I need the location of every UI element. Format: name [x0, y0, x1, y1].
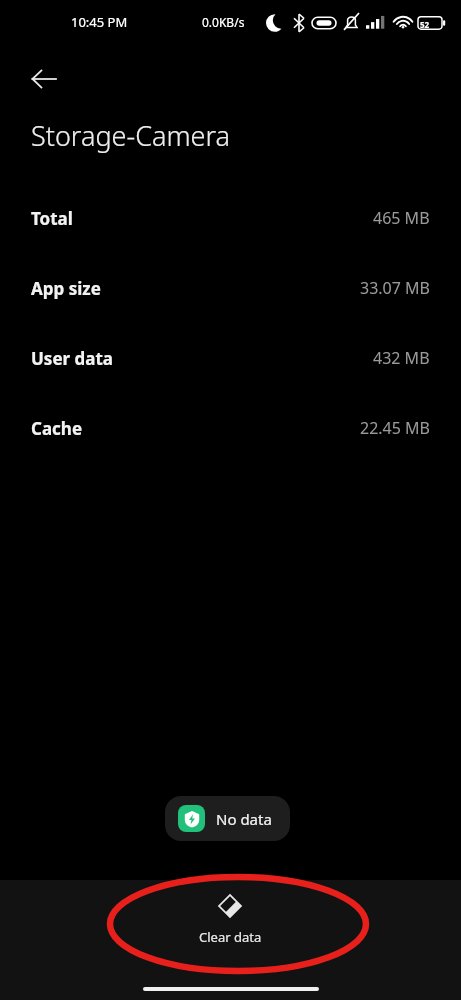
- button[interactable]: Clear data: [150, 893, 310, 946]
- staticText: Storage-Camera: [31, 117, 231, 154]
- button[interactable]: Back: [18, 53, 70, 105]
- button[interactable]: No data: [165, 796, 290, 841]
- staticText: No data: [216, 809, 272, 829]
- staticText: 22.45 MB: [360, 417, 430, 439]
- staticText: 432 MB: [373, 347, 430, 369]
- staticText: Clear data: [199, 928, 262, 946]
- staticText: App size: [31, 277, 101, 300]
- staticText: 33.07 MB: [360, 277, 430, 299]
- button[interactable]: App size: [0, 266, 461, 310]
- button[interactable]: User data: [0, 336, 461, 380]
- staticText: 0.0KB/s: [202, 14, 245, 30]
- staticText: Cache: [31, 417, 83, 440]
- staticText: 465 MB: [373, 207, 430, 229]
- button[interactable]: Total: [0, 196, 461, 240]
- staticText: User data: [31, 347, 114, 370]
- staticText: Total: [31, 207, 73, 230]
- staticText: 10:45 PM: [71, 13, 128, 31]
- staticText: 52: [420, 19, 430, 30]
- button[interactable]: Cache: [0, 406, 461, 450]
